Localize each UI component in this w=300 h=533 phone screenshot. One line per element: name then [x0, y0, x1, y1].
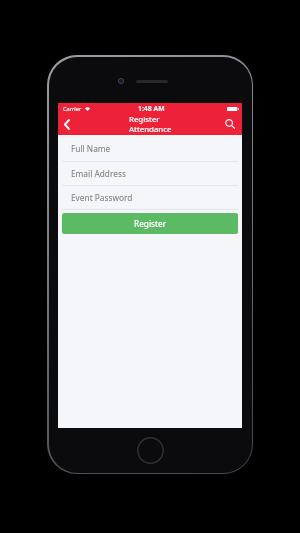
- button[interactable]: Email Address: [58, 162, 242, 186]
- staticText: Register: [134, 218, 167, 229]
- staticText: Attendance: [129, 124, 172, 134]
- staticText: Event Password: [71, 192, 133, 203]
- button[interactable]: Search: [219, 114, 242, 135]
- button[interactable]: Event Password: [58, 186, 242, 210]
- staticText: 1:48 AM: [138, 104, 165, 113]
- staticText: Carrier: [63, 105, 82, 113]
- staticText: Register: [129, 114, 160, 125]
- button[interactable]: Back: [58, 114, 75, 135]
- button[interactable]: Register: [62, 213, 238, 234]
- staticText: Full Name: [71, 143, 111, 154]
- staticText: Email Address: [71, 168, 126, 179]
- button[interactable]: Full Name: [58, 135, 242, 162]
